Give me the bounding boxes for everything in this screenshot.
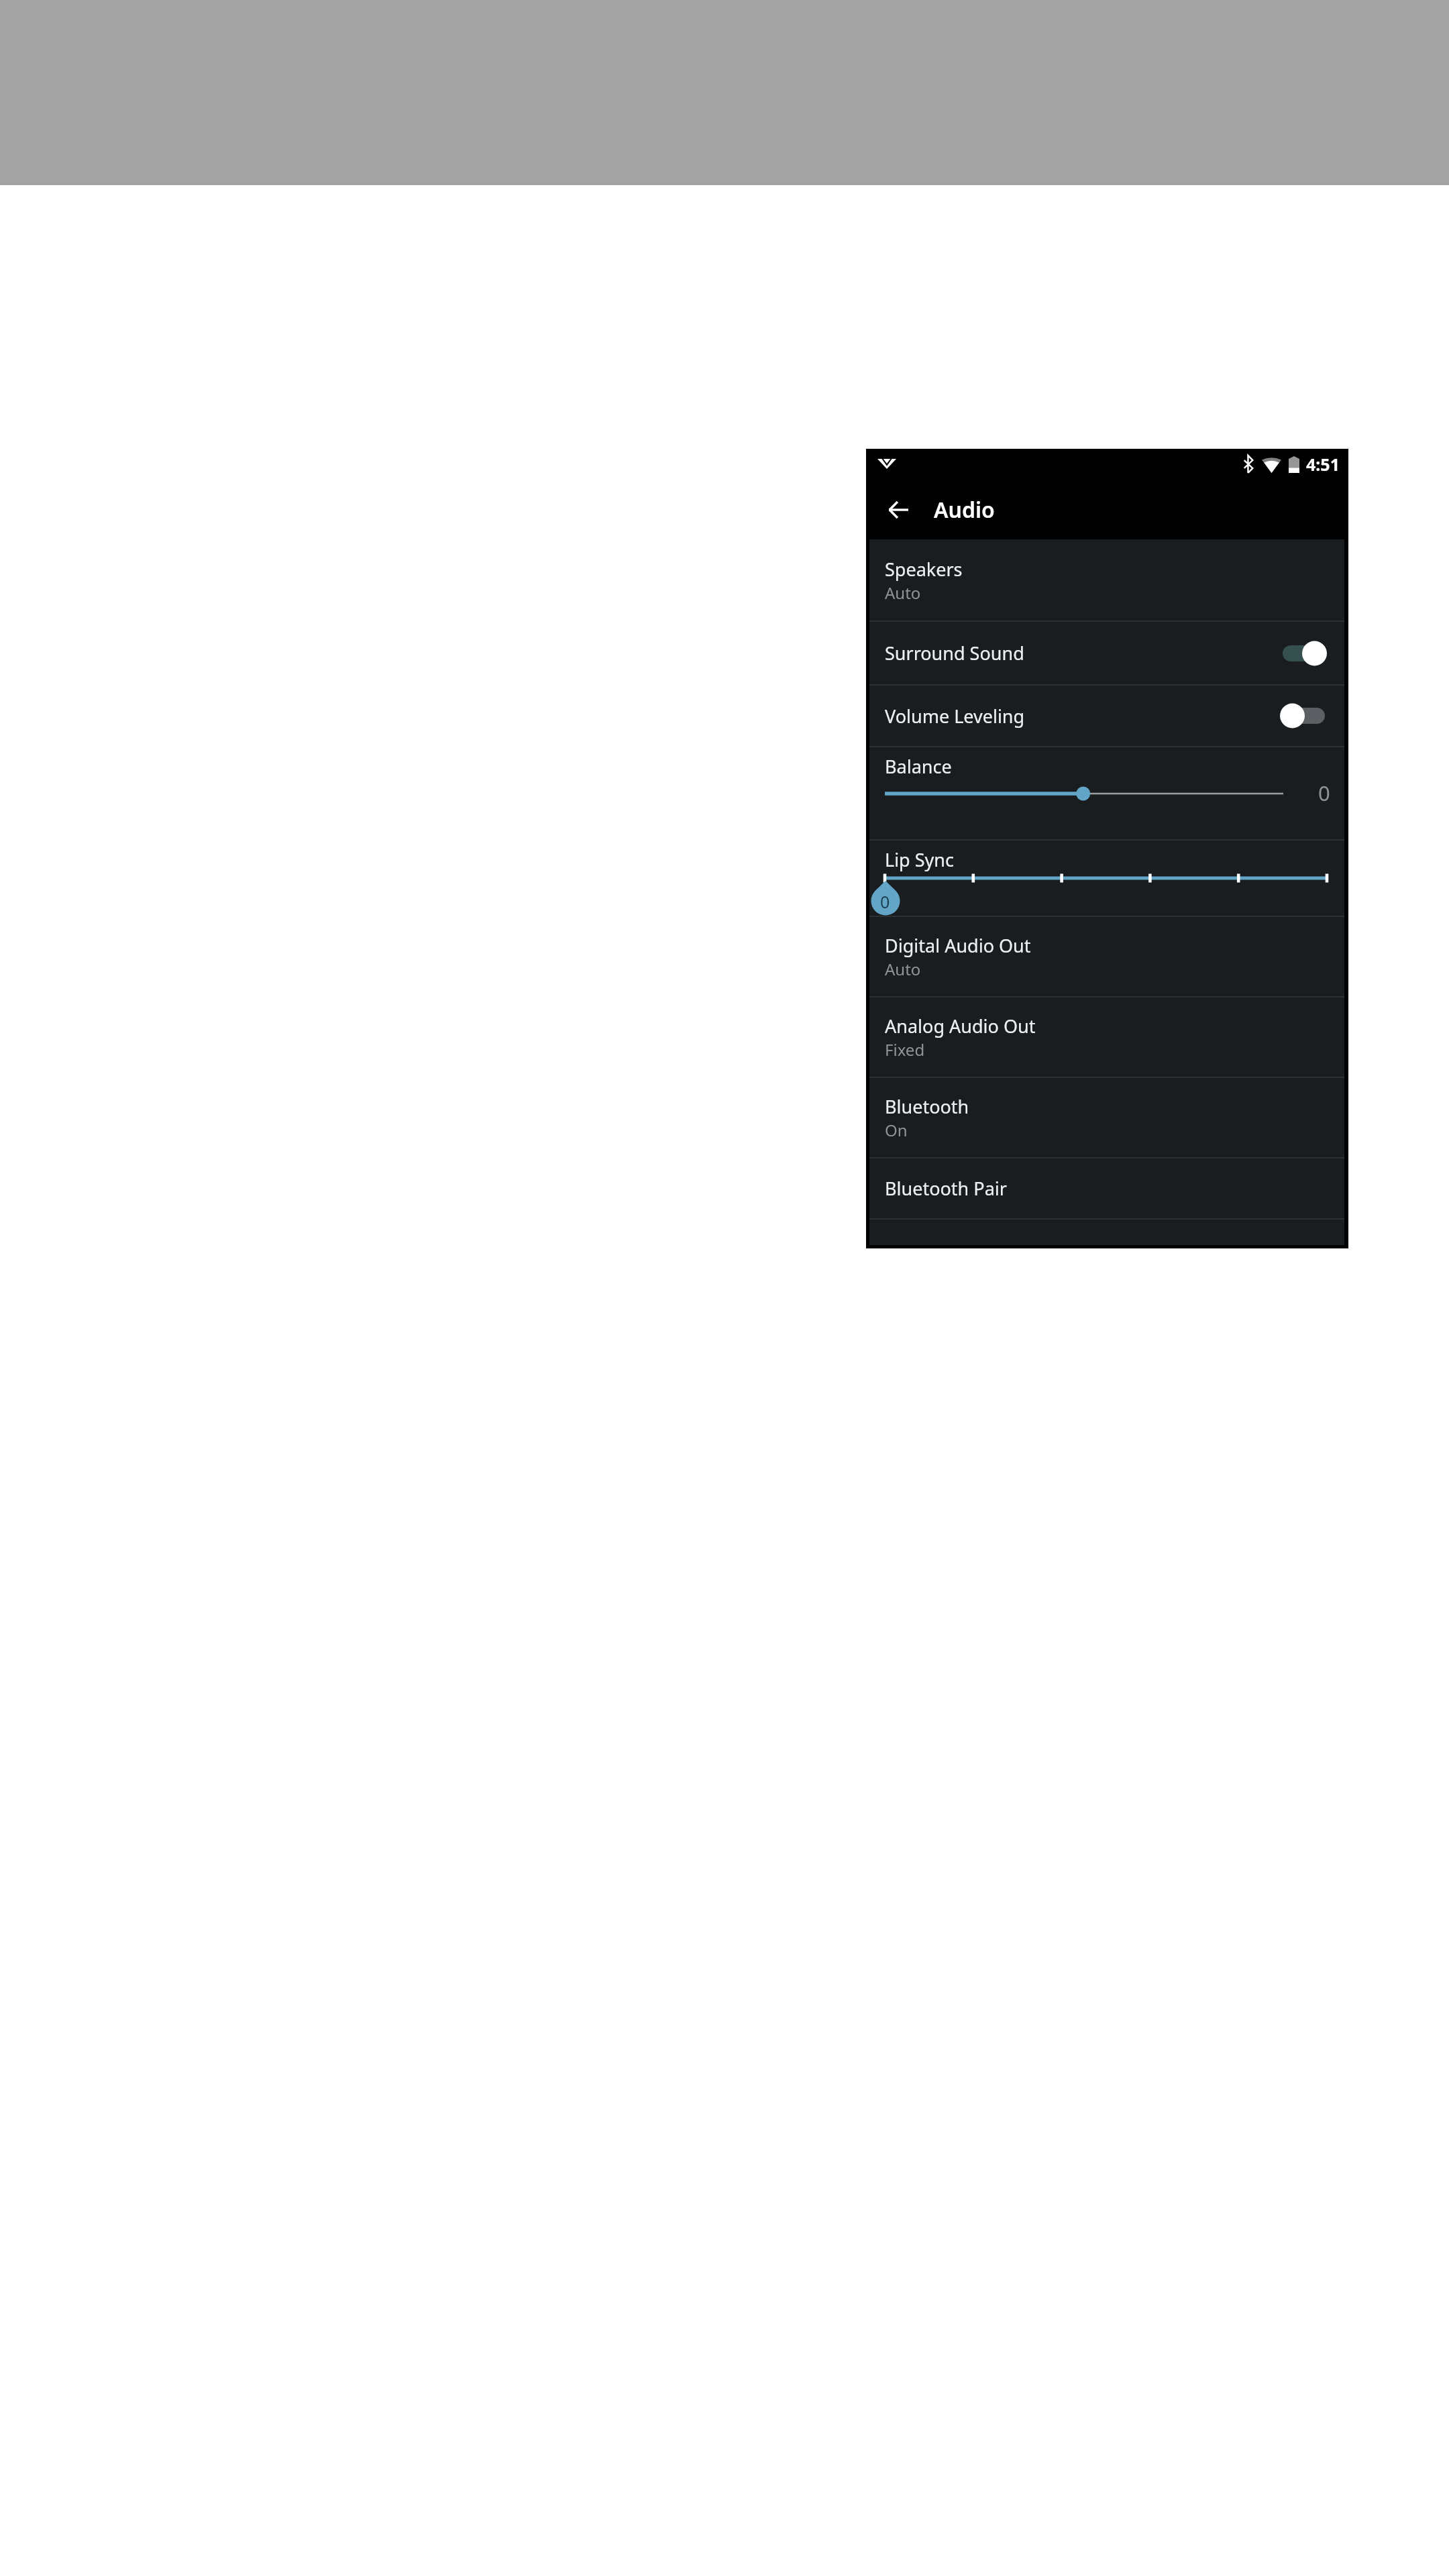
button[interactable]: Bluetooth Pair (869, 1159, 1344, 1218)
button[interactable]: Speakers (869, 539, 1344, 621)
button[interactable]: Volume Leveling (869, 686, 1344, 746)
staticText: Volume Leveling (885, 704, 1025, 729)
staticText: 0 (1318, 779, 1330, 807)
staticText: Balance (885, 754, 952, 779)
button[interactable]: Back (879, 480, 918, 539)
button[interactable]: Balance (869, 747, 1344, 839)
button[interactable]: Bluetooth (869, 1078, 1344, 1157)
button[interactable]: Digital Audio Out (869, 917, 1344, 996)
staticText: Lip Sync (885, 847, 954, 872)
staticText: Bluetooth Pair (885, 1176, 1007, 1201)
staticText: Analog Audio Out (885, 1014, 1036, 1038)
staticText: Surround Sound (885, 641, 1024, 665)
staticText: Auto (885, 958, 921, 980)
staticText: Bluetooth (885, 1094, 969, 1119)
staticText: Audio (934, 495, 995, 525)
staticText: On (885, 1119, 908, 1141)
button[interactable]: Lip Sync (869, 841, 1344, 916)
staticText: 0 (880, 890, 890, 913)
staticText: Auto (885, 582, 921, 604)
staticText: Speakers (885, 557, 963, 582)
button[interactable]: Surround Sound (869, 622, 1344, 684)
staticText: Fixed (885, 1038, 925, 1061)
staticText: Digital Audio Out (885, 933, 1031, 958)
button[interactable]: Analog Audio Out (869, 998, 1344, 1077)
staticText: 4:51 (1306, 453, 1340, 476)
